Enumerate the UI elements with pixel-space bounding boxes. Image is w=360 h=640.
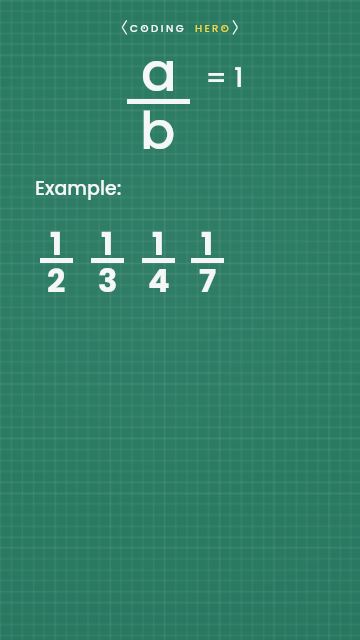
staticText: 1 bbox=[201, 221, 214, 266]
staticText: = bbox=[205, 58, 228, 99]
button[interactable]: One over 3 bbox=[91, 221, 124, 293]
staticText: b bbox=[140, 94, 176, 167]
staticText: Example: bbox=[35, 175, 122, 202]
staticText: 7 bbox=[199, 258, 217, 303]
staticText: 2 bbox=[47, 258, 66, 303]
button[interactable]: Coding Hero bbox=[122, 18, 246, 36]
button[interactable]: Fraction a over b equals 1 bbox=[118, 52, 250, 156]
staticText: 4 bbox=[148, 258, 170, 303]
staticText: HERO bbox=[195, 21, 232, 35]
staticText: a bbox=[141, 35, 177, 109]
button[interactable]: One over 7 bbox=[191, 221, 224, 293]
staticText: 1 bbox=[152, 221, 165, 266]
staticText: CODING bbox=[130, 21, 187, 35]
staticText: 1 bbox=[234, 59, 244, 97]
staticText: 1 bbox=[101, 221, 114, 266]
staticText: 1 bbox=[50, 221, 63, 266]
button[interactable]: One over 4 bbox=[142, 221, 175, 293]
staticText: 3 bbox=[98, 258, 118, 303]
button[interactable]: One over 2 bbox=[40, 221, 73, 293]
